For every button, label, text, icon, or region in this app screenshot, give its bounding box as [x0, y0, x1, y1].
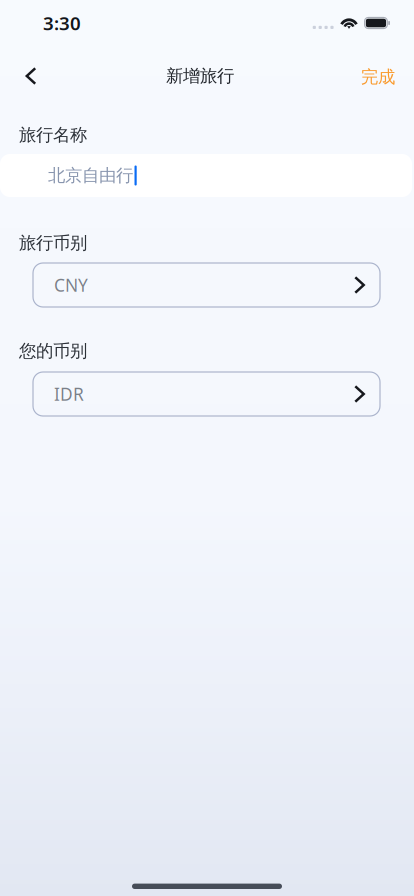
- staticText: 您的币别: [19, 340, 87, 362]
- button[interactable]: 完成: [343, 46, 395, 104]
- staticText: 旅行币别: [19, 232, 87, 254]
- staticText: IDR: [54, 382, 84, 405]
- staticText: 北京自由行: [48, 165, 133, 186]
- staticText: 新增旅行: [166, 65, 234, 87]
- staticText: CNY: [54, 273, 88, 296]
- staticText: 3:30: [43, 11, 81, 35]
- staticText: 完成: [361, 66, 395, 88]
- button[interactable]: CNY: [33, 263, 380, 307]
- button[interactable]: Back: [8, 46, 52, 104]
- button[interactable]: 北京自由行: [0, 154, 412, 197]
- button[interactable]: IDR: [33, 372, 380, 416]
- staticText: 旅行名称: [19, 124, 87, 146]
